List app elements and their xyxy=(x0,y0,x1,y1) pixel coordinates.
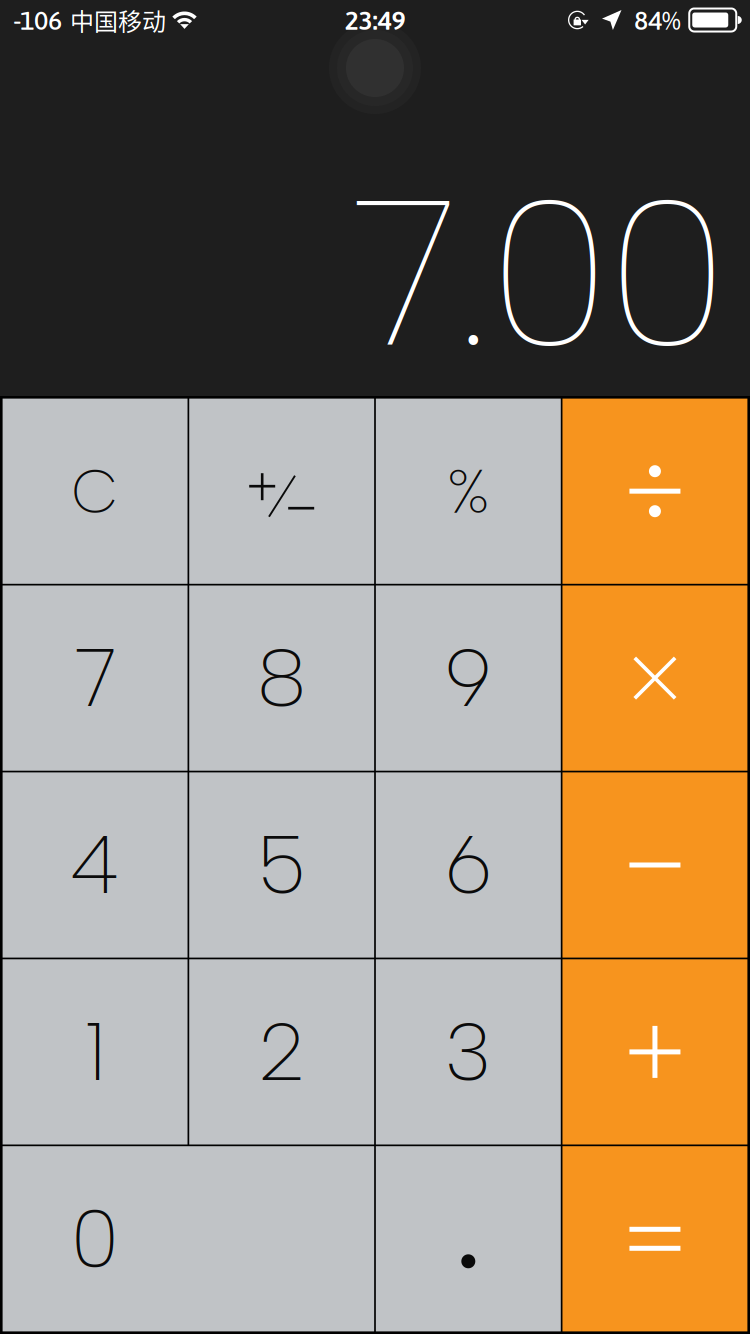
staticText: 0 xyxy=(71,1191,120,1287)
button[interactable]: 8 xyxy=(189,585,374,771)
staticText: C xyxy=(72,454,119,528)
staticText: 9 xyxy=(444,630,492,726)
button[interactable]: % xyxy=(376,399,561,584)
button[interactable]: 9 xyxy=(376,585,561,771)
button[interactable]: 5 xyxy=(189,772,374,958)
button[interactable]: Plus minus xyxy=(189,399,374,584)
staticText: 7.00 xyxy=(347,151,729,396)
button[interactable]: Equals xyxy=(562,1146,747,1331)
button[interactable]: 4 xyxy=(3,772,187,958)
staticText: 8 xyxy=(256,630,307,726)
staticText: 5 xyxy=(257,817,306,913)
staticText: 1 xyxy=(84,1004,106,1100)
button[interactable]: 0 xyxy=(3,1146,374,1331)
staticText: 3 xyxy=(444,1004,492,1100)
staticText: 84% xyxy=(634,5,681,35)
staticText: 4 xyxy=(69,817,121,913)
button[interactable]: Multiply xyxy=(562,585,747,771)
staticText: 中国移动 xyxy=(70,3,166,37)
staticText: 2 xyxy=(258,1004,306,1100)
staticText: -106 xyxy=(13,5,62,35)
button[interactable]: Subtract xyxy=(562,772,747,958)
staticText: 6 xyxy=(444,817,492,913)
button[interactable]: C xyxy=(3,399,187,584)
button[interactable]: 1 xyxy=(3,959,187,1144)
button[interactable]: 2 xyxy=(189,959,374,1144)
button[interactable]: Decimal point xyxy=(376,1146,561,1331)
button[interactable]: Add xyxy=(562,959,747,1144)
staticText: % xyxy=(447,454,490,528)
button[interactable]: 6 xyxy=(376,772,561,958)
button[interactable]: 7 xyxy=(3,585,187,771)
button[interactable]: Divide xyxy=(562,399,747,584)
button[interactable]: 3 xyxy=(376,959,561,1144)
staticText: 23:49 xyxy=(344,5,405,35)
staticText: 7 xyxy=(73,630,117,726)
